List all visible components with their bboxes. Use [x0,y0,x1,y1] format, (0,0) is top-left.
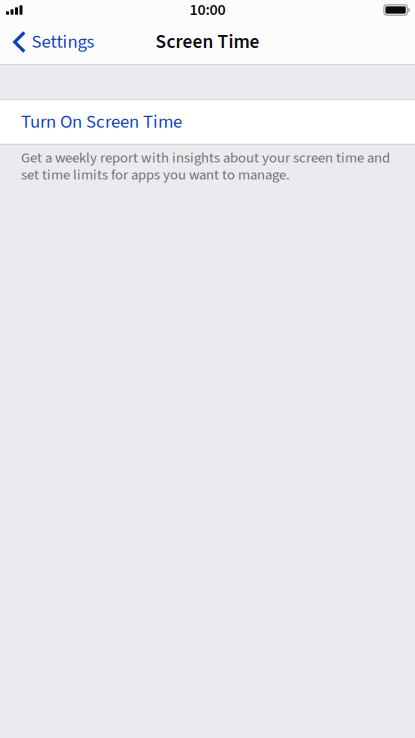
staticText: Turn On Screen Time [21,109,182,135]
staticText: set time limits for apps you want to man… [21,165,290,185]
button[interactable]: Settings [0,20,104,64]
staticText: Settings [31,29,94,55]
staticText: 10:00 [189,0,225,21]
staticText: Get a weekly report with insights about … [21,148,390,168]
button[interactable]: Turn On Screen Time [0,100,415,144]
staticText: Screen Time [155,28,259,56]
